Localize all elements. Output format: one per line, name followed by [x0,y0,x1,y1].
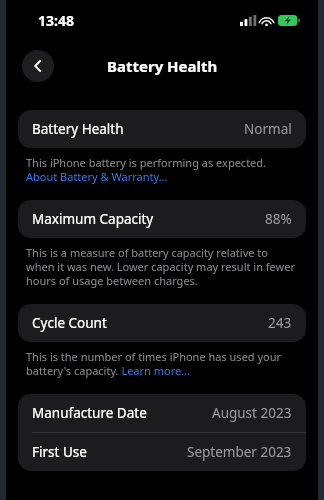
staticText: Normal [244,120,292,138]
staticText: First Use [32,443,87,461]
staticText: This is the number of times iPhone has u… [26,349,298,378]
staticText: September 2023 [187,443,292,461]
staticText: 88% [265,210,292,228]
staticText: Cycle Count [32,314,107,332]
staticText: Maximum Capacity [32,210,154,228]
button[interactable]: Cycle Count [18,304,306,342]
staticText: Battery Health [107,56,218,76]
button[interactable]: Manufacture Date [18,394,306,432]
staticText: Manufacture Date [32,404,147,422]
staticText: This is a measure of battery capacity re… [26,245,298,288]
button[interactable]: Battery Health [18,110,306,148]
staticText: 13:48 [38,11,74,30]
button[interactable]: Back [22,50,54,82]
staticText: Battery Health [32,120,124,138]
staticText: This iPhone battery is performing as exp… [26,155,298,184]
staticText: 243 [268,314,292,332]
staticText: August 2023 [212,404,292,422]
button[interactable]: Maximum Capacity [18,200,306,238]
button[interactable]: First Use [18,433,306,471]
